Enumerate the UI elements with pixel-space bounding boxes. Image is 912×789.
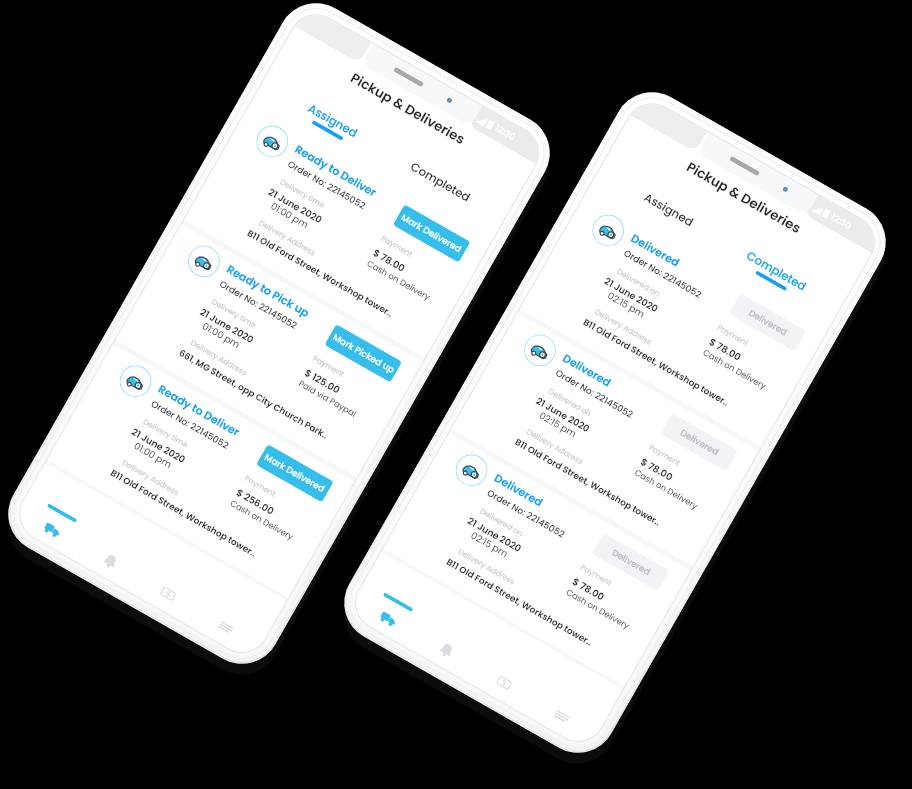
staticText: 01:00 pm	[200, 319, 243, 351]
staticText: B11 Old Ford Street, Workshop tower..	[444, 556, 594, 649]
button[interactable]: Delivered	[592, 533, 670, 591]
button[interactable]: Notifications	[73, 499, 165, 592]
button[interactable]: Ready to Pick up	[115, 224, 423, 477]
staticText: $ 125.00	[302, 366, 343, 397]
staticText: 12:30	[828, 211, 854, 233]
staticText: 21 June 2020	[602, 274, 661, 315]
staticText: Delivery Address	[257, 217, 318, 259]
staticText: 12:30	[492, 122, 518, 144]
button[interactable]: Menu	[188, 565, 281, 659]
staticText: 01:00 pm	[268, 199, 311, 231]
button[interactable]: Notifications	[409, 588, 501, 681]
staticText: Completed	[408, 159, 474, 206]
staticText: Delivered	[560, 350, 615, 391]
button[interactable]: Payments	[130, 531, 223, 625]
staticText: Cash on Delivery	[228, 497, 296, 543]
staticText: $ 78.00	[707, 335, 743, 364]
staticText: B11 Old Ford Street, Workshop tower..	[581, 316, 731, 410]
staticText: Delivered	[677, 427, 721, 459]
button[interactable]: Mark Delivered	[256, 444, 334, 502]
staticText: Order No: 22145052	[286, 157, 368, 212]
staticText: $ 78.00	[371, 246, 407, 275]
staticText: Payment	[578, 562, 614, 589]
button[interactable]: Delivered	[660, 413, 738, 472]
staticText: Delivery Address	[188, 337, 249, 379]
staticText: Mark Delivered	[262, 451, 327, 496]
staticText: Payment	[311, 353, 347, 380]
staticText: Pickup & Deliveries	[683, 158, 804, 238]
staticText: 02:15 pm	[469, 529, 511, 560]
staticText: Cash on Delivery	[564, 586, 632, 632]
staticText: Delivered	[491, 470, 546, 511]
button[interactable]: Delivered	[520, 193, 827, 447]
staticText: Delivered on	[615, 266, 662, 299]
button[interactable]: Payments	[466, 620, 559, 714]
staticText: Cash on Delivery	[701, 346, 769, 393]
staticText: Payment	[715, 322, 751, 349]
staticText: 21 June 2020	[465, 514, 524, 555]
staticText: B11 Old Ford Street, Workshop tower..	[245, 227, 395, 321]
button[interactable]: Delivered	[729, 293, 807, 352]
staticText: 21 June 2020	[266, 185, 325, 226]
staticText: Order No: 22145052	[485, 486, 568, 541]
staticText: Payment	[647, 442, 683, 469]
staticText: $ 256.00	[234, 486, 277, 518]
staticText: Ready to Deliver	[292, 141, 380, 201]
staticText: Delivery time	[209, 296, 258, 331]
staticText: Delivery time	[278, 176, 327, 211]
staticText: 661, MG Street, opp City Church Park..	[176, 347, 330, 442]
staticText: Order No: 22145052	[622, 246, 704, 301]
staticText: Pickup & Deliveries	[347, 69, 468, 149]
staticText: Delivered	[628, 230, 683, 271]
button[interactable]: Delivered	[451, 313, 759, 566]
staticText: Payment	[242, 473, 278, 500]
button[interactable]: Completed	[383, 146, 495, 222]
staticText: $ 78.00	[638, 455, 675, 484]
staticText: 01:00 pm	[132, 439, 175, 471]
button[interactable]: Mark Picked up	[324, 324, 402, 383]
staticText: Ready to Pick up	[224, 261, 312, 321]
staticText: Delivery Address	[120, 457, 181, 498]
button[interactable]: Menu	[524, 654, 617, 748]
button[interactable]: Ready to Deliver	[184, 104, 491, 358]
staticText: Delivered on	[546, 386, 593, 419]
staticText: Order No: 22145052	[217, 277, 300, 332]
button[interactable]: Mark Delivered	[393, 204, 471, 263]
staticText: Paid via Paypal	[296, 377, 359, 420]
staticText: Assigned	[305, 100, 361, 141]
button[interactable]: Assigned	[612, 174, 724, 250]
staticText: Mark Picked up	[330, 331, 397, 377]
staticText: Delivery time	[141, 416, 190, 451]
staticText: Delivered on	[478, 506, 525, 539]
staticText: Order No: 22145052	[149, 397, 232, 452]
staticText: Mark Delivered	[399, 211, 464, 256]
staticText: Completed	[744, 248, 810, 295]
button[interactable]: Deliveries	[352, 555, 444, 649]
staticText: Delivered	[746, 307, 790, 339]
staticText: Delivery Address	[593, 306, 654, 348]
staticText: $ 78.00	[570, 575, 607, 603]
staticText: Delivery Address	[524, 426, 585, 468]
staticText: Cash on Delivery	[365, 257, 433, 304]
staticText: Cash on Delivery	[632, 466, 701, 512]
staticText: Ready to Deliver	[155, 381, 243, 440]
staticText: Assigned	[641, 189, 697, 230]
button[interactable]: Assigned	[276, 85, 388, 161]
staticText: 02:15 pm	[605, 289, 647, 320]
button[interactable]: Completed	[719, 235, 831, 311]
staticText: 21 June 2020	[198, 305, 256, 346]
staticText: 21 June 2020	[534, 394, 592, 435]
button[interactable]: Deliveries	[16, 466, 108, 560]
staticText: 21 June 2020	[129, 425, 188, 466]
button[interactable]: Delivered	[383, 433, 690, 686]
staticText: Delivery Address	[456, 546, 517, 587]
staticText: B11 Old Ford Street, Workshop tower..	[108, 467, 258, 560]
staticText: Delivered	[609, 547, 653, 579]
staticText: Payment	[379, 233, 415, 260]
staticText: Order No: 22145052	[553, 366, 636, 421]
staticText: B11 Old Ford Street, Workshop tower..	[512, 436, 663, 529]
button[interactable]: Ready to Deliver	[47, 344, 354, 597]
staticText: 02:15 pm	[537, 409, 579, 440]
